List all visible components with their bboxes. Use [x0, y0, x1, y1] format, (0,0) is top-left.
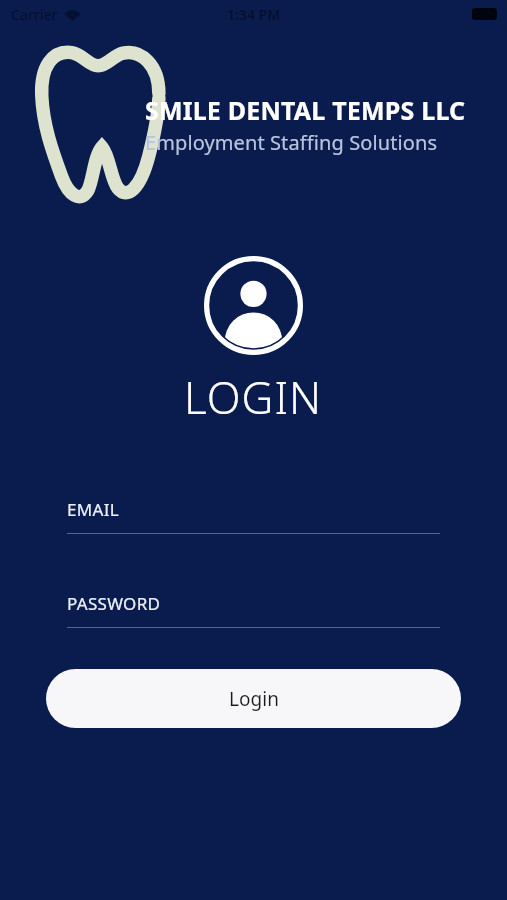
staticText: LOGIN	[184, 367, 323, 427]
button[interactable]: PASSWORD	[67, 592, 440, 628]
staticText: EMAIL	[67, 498, 119, 521]
staticText: Login	[229, 686, 279, 712]
staticText: PASSWORD	[67, 592, 161, 615]
button[interactable]: EMAIL	[67, 498, 440, 534]
staticText: SMILE DENTAL TEMPS LLC	[145, 93, 466, 127]
button[interactable]: Login	[46, 669, 461, 728]
other: User account	[204, 256, 303, 355]
staticText: Carrier	[11, 5, 58, 24]
staticText: 1:34 PM	[227, 5, 281, 24]
staticText: Employment Staffing Solutions	[145, 129, 438, 156]
